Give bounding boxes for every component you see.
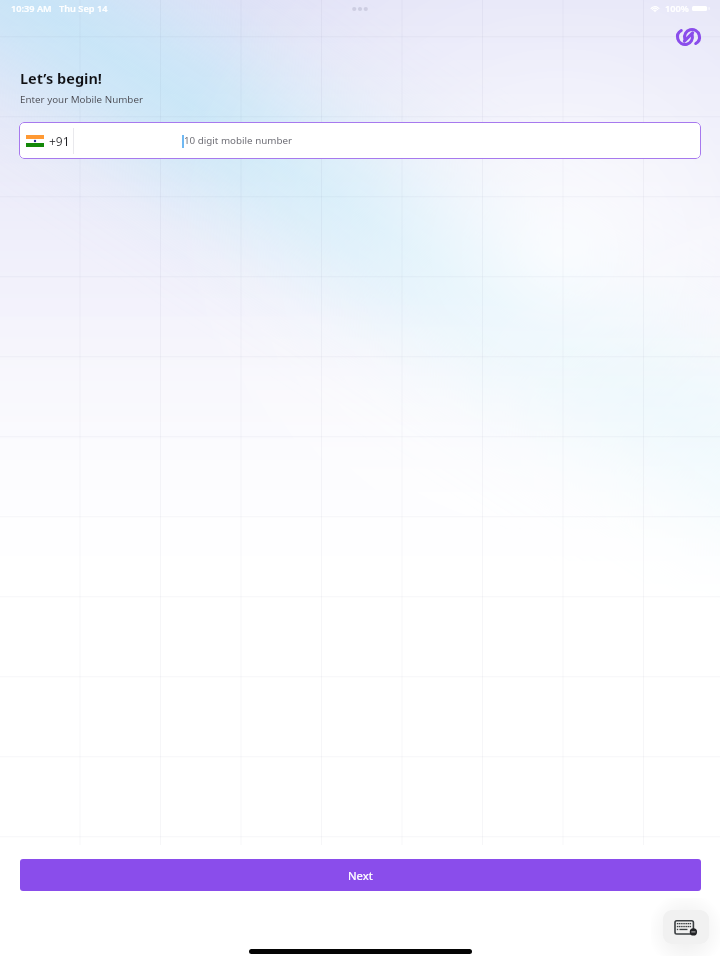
staticText: 10:39 AM bbox=[11, 2, 52, 15]
staticText: Enter your Mobile Number bbox=[20, 93, 143, 106]
staticText: 10 digit mobile number bbox=[184, 134, 293, 147]
staticText: Next bbox=[348, 868, 373, 883]
staticText: Let’s begin! bbox=[20, 68, 102, 88]
staticText: 100% bbox=[665, 2, 689, 15]
button[interactable]: Next bbox=[20, 859, 701, 891]
staticText: +91 bbox=[49, 133, 70, 149]
button[interactable]: +91 bbox=[19, 122, 701, 159]
staticText: Thu Sep 14 bbox=[59, 2, 108, 15]
button[interactable]: Change keyboard bbox=[663, 910, 709, 944]
button[interactable]: App logo bbox=[676, 28, 701, 46]
